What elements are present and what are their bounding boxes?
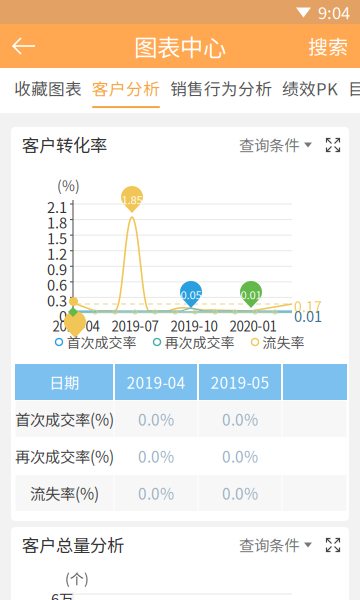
staticText: 1.2: [47, 243, 67, 264]
staticText: 1.5: [47, 227, 67, 248]
button[interactable]: 查询条件: [239, 533, 311, 556]
staticText: 首次成交率(%): [15, 408, 114, 430]
staticText: 9:04: [318, 0, 350, 24]
button[interactable]: 目标完: [343, 68, 360, 113]
staticText: 客户分析: [92, 76, 160, 100]
staticText: 0.01: [294, 305, 322, 326]
staticText: 查询条件: [239, 133, 299, 156]
button[interactable]: 绩效PK: [277, 68, 343, 113]
staticText: 查询条件: [239, 533, 299, 556]
staticText: 1.85: [121, 191, 142, 207]
staticText: 2019-10: [170, 316, 217, 335]
staticText: 2019-04: [126, 371, 185, 393]
staticText: 再次成交率: [164, 332, 234, 352]
staticText: 0.0%: [222, 445, 258, 467]
staticText: 0.6: [47, 274, 67, 295]
staticText: 2019-05: [210, 371, 269, 393]
staticText: 0.01: [240, 286, 261, 302]
button[interactable]: 客户分析: [87, 68, 165, 113]
staticText: (%): [57, 175, 80, 195]
staticText: 6万: [51, 588, 74, 600]
staticText: 0.3: [47, 289, 67, 311]
staticText: 客户总量分析: [22, 532, 124, 557]
button[interactable]: Back: [0, 24, 48, 68]
staticText: 2.1: [47, 196, 67, 217]
staticText: 0.17: [294, 296, 322, 316]
button[interactable]: 搜索: [296, 24, 360, 68]
staticText: 流失率(%): [30, 482, 99, 504]
staticText: 0.0%: [138, 482, 174, 504]
staticText: 收藏图表: [14, 76, 82, 100]
button[interactable]: Fullscreen: [326, 538, 339, 551]
button[interactable]: 销售行为分析: [165, 68, 277, 113]
staticText: 销售行为分析: [170, 76, 272, 100]
staticText: 日期: [49, 371, 79, 393]
staticText: 1.8: [47, 212, 67, 233]
staticText: 搜索: [308, 31, 348, 60]
button[interactable]: 查询条件: [239, 133, 311, 156]
staticText: 0.9: [47, 258, 67, 279]
staticText: 0.0%: [222, 482, 258, 504]
staticText: 图表中心: [134, 29, 226, 63]
staticText: 客户转化率: [22, 132, 107, 157]
staticText: 绩效PK: [282, 76, 338, 100]
staticText: 首次成交率: [66, 332, 136, 352]
staticText: (个): [65, 568, 89, 588]
staticText: 目标完: [348, 76, 360, 100]
staticText: 流失率: [262, 332, 304, 352]
staticText: 0.05: [180, 286, 201, 302]
staticText: 0: [59, 305, 67, 326]
staticText: 再次成交率(%): [15, 445, 114, 467]
staticText: 2019-04: [52, 316, 99, 335]
staticText: 0.0%: [138, 445, 174, 467]
staticText: 0.0%: [138, 408, 174, 430]
staticText: 2019-07: [111, 316, 158, 335]
button[interactable]: 收藏图表: [9, 68, 87, 113]
button[interactable]: Fullscreen: [326, 138, 339, 151]
staticText: 0.0%: [222, 408, 258, 430]
staticText: 2020-01: [229, 316, 276, 335]
